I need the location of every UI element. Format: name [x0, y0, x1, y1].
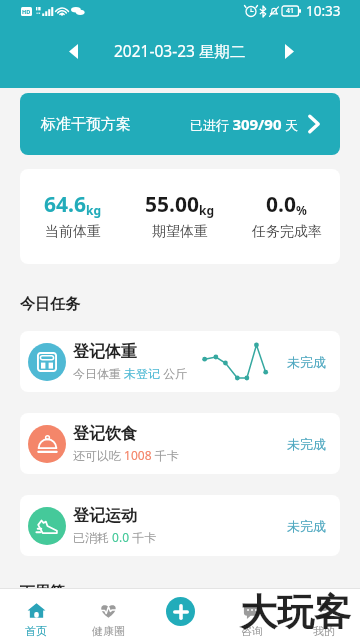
staticText: 41 — [286, 6, 295, 16]
staticText: 今日任务 — [20, 295, 80, 314]
staticText: 健康圈 — [92, 624, 125, 638]
button[interactable]: 登记体重 — [20, 331, 340, 392]
staticText: 登记饮食 — [73, 424, 137, 444]
staticText: kg — [199, 202, 215, 218]
button[interactable]: 登记运动 — [20, 495, 340, 556]
staticText: kg — [86, 202, 102, 218]
staticText: 当前体重 — [45, 223, 101, 241]
staticText: 55.00 — [145, 190, 199, 219]
staticText: 未完成 — [287, 354, 326, 370]
staticText: 期望体重 — [152, 223, 208, 241]
button[interactable]: Previous day — [54, 36, 92, 74]
staticText: 0.0 — [266, 190, 296, 219]
staticText: 登记运动 — [73, 506, 137, 526]
button[interactable]: 首页 — [0, 588, 72, 640]
staticText: 2021-03-23 星期二 — [114, 40, 246, 61]
staticText: % — [296, 202, 307, 218]
staticText: 首页 — [25, 624, 47, 638]
button[interactable]: 标准干预方案 — [20, 93, 340, 155]
staticText: 登记体重 — [73, 342, 137, 362]
staticText: 今日体重 未登记 公斤 — [73, 365, 188, 381]
staticText: 还可以吃 1008 千卡 — [73, 447, 179, 463]
staticText: 未完成 — [287, 436, 326, 452]
staticText: 任务完成率 — [252, 223, 322, 241]
button[interactable]: Add — [166, 597, 195, 626]
button[interactable]: 我的 — [288, 588, 360, 640]
staticText: 未完成 — [287, 518, 326, 534]
staticText: 大玩客 — [240, 589, 351, 636]
staticText: 咨询 — [241, 624, 263, 638]
staticText: 标准干预方案 — [41, 115, 131, 134]
staticText: 10:33 — [306, 2, 341, 20]
staticText: 下周第 — [20, 583, 65, 588]
staticText: 我的 — [313, 624, 335, 638]
button[interactable]: 登记饮食 — [20, 413, 340, 474]
staticText: HD — [22, 8, 31, 15]
staticText: 已消耗 0.0 千卡 — [73, 529, 157, 545]
button[interactable]: 咨询 — [216, 588, 288, 640]
button[interactable]: 健康圈 — [72, 588, 144, 640]
staticText: 已进行 309/90 天 — [190, 114, 298, 134]
button[interactable]: Next day — [270, 36, 308, 74]
staticText: 64.6 — [44, 190, 86, 219]
